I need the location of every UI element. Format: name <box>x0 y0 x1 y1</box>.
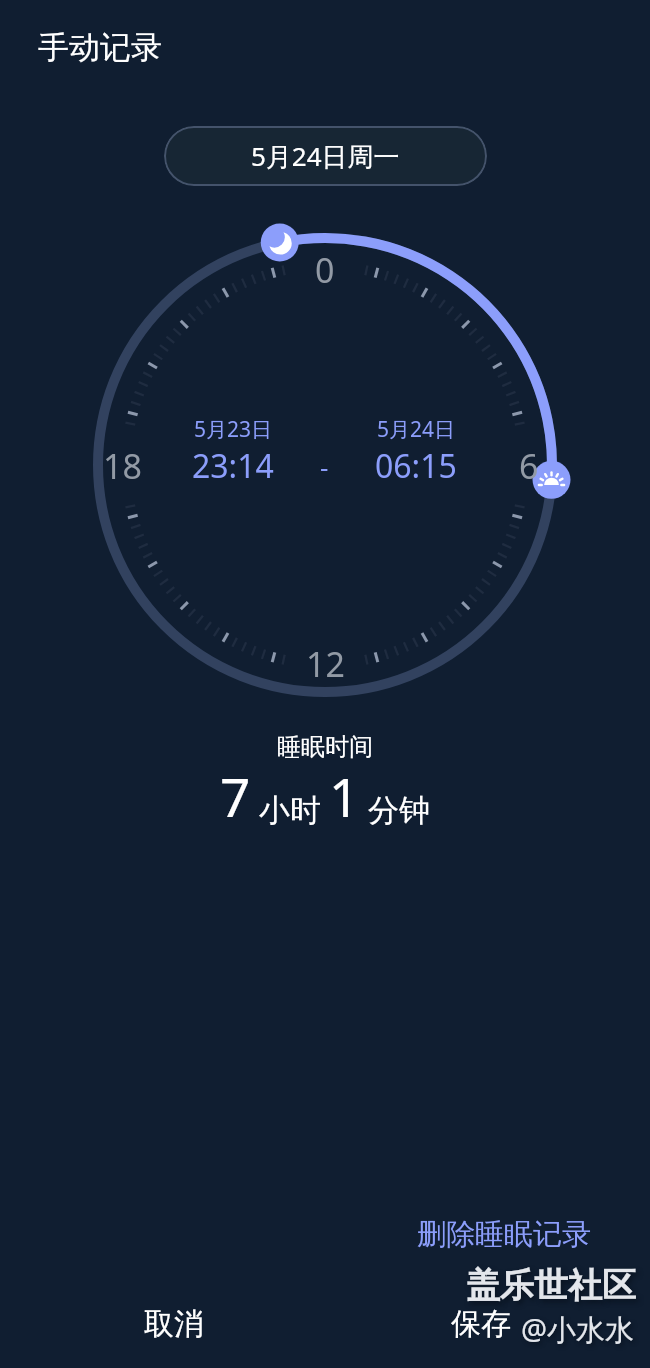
staticText: 手动记录 <box>38 28 162 67</box>
staticText: 5月23日 <box>194 415 273 444</box>
staticText: - <box>320 449 329 484</box>
button[interactable]: 删除睡眠记录 <box>409 1208 583 1256</box>
staticText: 保存 <box>451 1305 511 1343</box>
button[interactable]: 取消 <box>114 1295 234 1353</box>
staticText: 7 <box>220 760 251 832</box>
staticText: 6 <box>519 443 539 489</box>
staticText: 06:15 <box>375 444 457 488</box>
staticText: 18 <box>103 443 142 489</box>
staticText: 0 <box>315 247 335 293</box>
staticText: 12 <box>306 641 345 687</box>
staticText: 睡眠时间 <box>277 732 373 762</box>
button[interactable]: 保存 <box>421 1295 541 1353</box>
staticText: 5月24日周一 <box>251 138 400 174</box>
staticText: 取消 <box>144 1305 204 1343</box>
staticText: 盖乐世社区 <box>466 1264 636 1307</box>
staticText: 分钟 <box>368 791 430 830</box>
button[interactable]: 起床时间手柄 06:15 <box>530 464 572 506</box>
button[interactable]: 5月24日 <box>356 410 476 486</box>
staticText: @小水水 <box>521 1309 635 1349</box>
staticText: 小时 <box>259 791 321 830</box>
staticText: 删除睡眠记录 <box>417 1216 591 1253</box>
staticText: 23:14 <box>192 444 274 488</box>
staticText: 1 <box>329 760 360 832</box>
button[interactable]: 睡觉时间手柄 23:14 <box>258 221 300 263</box>
button[interactable]: 5月24日周一 <box>164 126 487 186</box>
staticText: 5月24日 <box>377 415 456 444</box>
button[interactable]: 5月23日 <box>173 410 293 486</box>
